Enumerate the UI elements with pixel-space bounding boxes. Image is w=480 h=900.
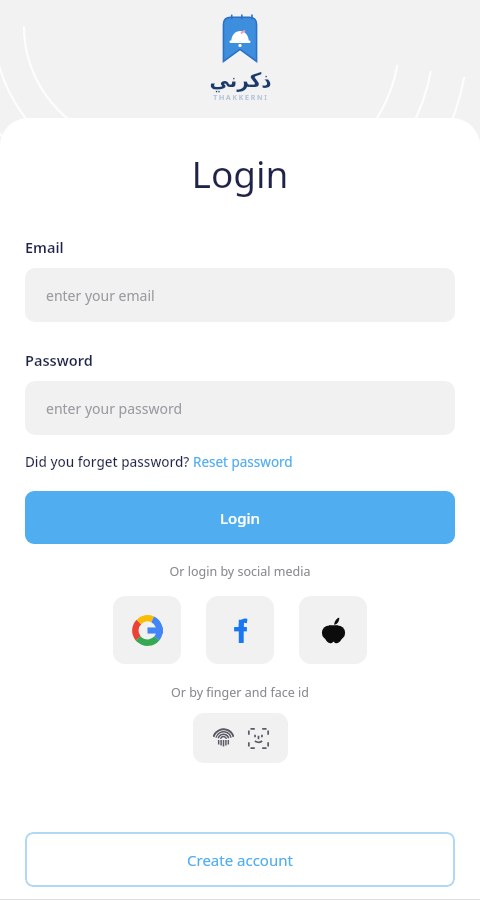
button[interactable]: enter your email bbox=[25, 268, 455, 322]
staticText: Login bbox=[25, 148, 455, 198]
button[interactable]: Sign in with fingerprint or face ID bbox=[193, 713, 288, 763]
staticText: Or login by social media bbox=[25, 563, 455, 580]
staticText: Create account bbox=[187, 850, 293, 870]
staticText: Did you forget password? bbox=[25, 453, 193, 471]
staticText: enter your password bbox=[46, 399, 183, 418]
button[interactable]: Create account bbox=[25, 832, 455, 887]
button[interactable]: enter your password bbox=[25, 381, 455, 435]
staticText: T H A K K E R N I bbox=[213, 93, 267, 103]
staticText: ذكرني bbox=[209, 68, 272, 91]
staticText: Password bbox=[25, 350, 93, 370]
button[interactable]: Login bbox=[25, 491, 455, 544]
button[interactable]: Reset password bbox=[193, 453, 293, 471]
button[interactable]: Sign in with Google bbox=[113, 596, 181, 664]
staticText: Login bbox=[220, 508, 260, 528]
staticText: Email bbox=[25, 237, 64, 257]
staticText: enter your email bbox=[46, 286, 155, 305]
staticText: Or by finger and face id bbox=[25, 684, 455, 701]
button[interactable]: Sign in with Facebook bbox=[206, 596, 274, 664]
staticText: Reset password bbox=[193, 453, 293, 471]
button[interactable]: Sign in with Apple bbox=[299, 596, 367, 664]
